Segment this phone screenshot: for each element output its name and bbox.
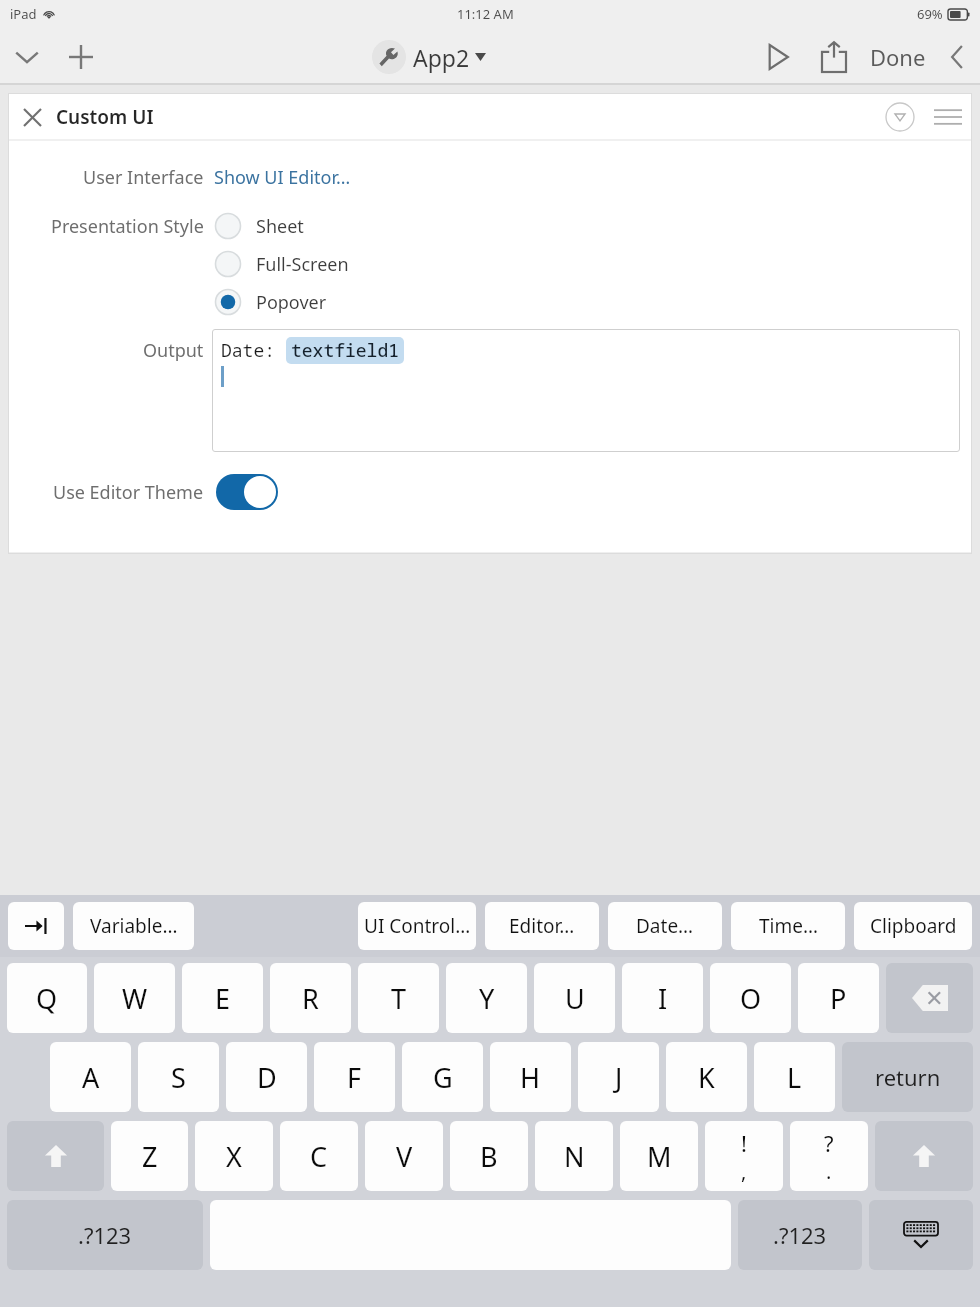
staticText: X xyxy=(226,1138,242,1175)
staticText: Sheet xyxy=(256,214,304,239)
button[interactable]: return xyxy=(842,1042,973,1112)
staticText: M xyxy=(647,1138,672,1175)
button[interactable]: Hide keyboard xyxy=(869,1200,973,1270)
button[interactable]: Y xyxy=(446,963,527,1033)
button[interactable]: D xyxy=(226,1042,307,1112)
button[interactable]: Close xyxy=(8,93,56,141)
button[interactable]: R xyxy=(270,963,351,1033)
button[interactable]: E xyxy=(182,963,263,1033)
staticText: U xyxy=(565,980,585,1017)
button[interactable]: W xyxy=(94,963,175,1033)
button[interactable]: Back xyxy=(934,34,980,80)
button[interactable]: M xyxy=(620,1121,698,1191)
staticText: B xyxy=(480,1138,498,1175)
button[interactable]: App2 xyxy=(372,40,486,74)
button[interactable]: Variable… xyxy=(73,902,194,950)
staticText: textfield1 xyxy=(291,338,399,363)
button[interactable]: Run xyxy=(750,29,806,85)
button[interactable]: P xyxy=(798,963,879,1033)
button[interactable]: UI Control… xyxy=(358,902,476,950)
staticText: 69% xyxy=(917,5,943,23)
button[interactable]: Editor… xyxy=(485,902,599,950)
staticText: Popover xyxy=(256,290,327,315)
button[interactable]: .?123 xyxy=(7,1200,203,1270)
staticText: . xyxy=(826,1158,832,1185)
button[interactable]: ! xyxy=(705,1121,783,1191)
button[interactable]: Collapse section xyxy=(876,93,924,141)
button[interactable]: Shift xyxy=(7,1121,104,1191)
button[interactable]: Done xyxy=(862,28,934,85)
button[interactable]: S xyxy=(138,1042,219,1112)
button[interactable]: A xyxy=(50,1042,131,1112)
staticText: D xyxy=(257,1059,277,1096)
staticText: A xyxy=(82,1059,100,1096)
staticText: App2 xyxy=(413,42,470,73)
staticText: Full-Screen xyxy=(256,252,349,277)
button[interactable]: J xyxy=(578,1042,659,1112)
staticText: Variable… xyxy=(90,913,178,939)
button[interactable]: O xyxy=(710,963,791,1033)
button[interactable]: G xyxy=(402,1042,483,1112)
staticText: K xyxy=(698,1059,715,1096)
staticText: Date… xyxy=(636,913,694,939)
button[interactable]: Popover xyxy=(214,283,327,321)
button[interactable]: T xyxy=(358,963,439,1033)
button[interactable]: Date… xyxy=(608,902,722,950)
button[interactable]: .?123 xyxy=(738,1200,862,1270)
staticText: Editor… xyxy=(509,913,575,939)
staticText: J xyxy=(615,1059,623,1096)
staticText: Time… xyxy=(759,913,818,939)
staticText: iPad xyxy=(10,5,37,23)
button[interactable]: B xyxy=(450,1121,528,1191)
button[interactable]: K xyxy=(666,1042,747,1112)
button[interactable]: Add xyxy=(54,30,108,84)
staticText: Done xyxy=(870,42,926,72)
button[interactable]: ? xyxy=(790,1121,868,1191)
button[interactable]: Share xyxy=(806,29,862,85)
staticText: P xyxy=(830,980,847,1017)
button[interactable]: Shift right xyxy=(875,1121,973,1191)
button[interactable]: N xyxy=(535,1121,613,1191)
staticText: G xyxy=(433,1059,453,1096)
button[interactable]: Q xyxy=(7,963,87,1033)
button[interactable]: Sheet xyxy=(214,207,304,245)
button[interactable]: H xyxy=(490,1042,571,1112)
button[interactable]: F xyxy=(314,1042,395,1112)
staticText: Y xyxy=(479,980,495,1017)
button[interactable]: U xyxy=(534,963,615,1033)
button[interactable]: C xyxy=(280,1121,358,1191)
button[interactable]: V xyxy=(365,1121,443,1191)
button[interactable]: Z xyxy=(111,1121,188,1191)
staticText: L xyxy=(787,1059,802,1096)
staticText: I xyxy=(658,980,668,1017)
staticText: W xyxy=(122,980,148,1017)
staticText: S xyxy=(171,1059,186,1096)
button[interactable]: Time… xyxy=(731,902,845,950)
button[interactable]: Collapse xyxy=(0,30,54,84)
button[interactable]: Use Editor Theme toggle xyxy=(216,474,278,510)
staticText: , xyxy=(741,1158,747,1185)
staticText: N xyxy=(564,1138,585,1175)
staticText: Presentation Style xyxy=(51,214,204,239)
staticText: .?123 xyxy=(78,1220,132,1250)
button[interactable]: Reorder xyxy=(924,93,972,141)
button[interactable]: I xyxy=(622,963,703,1033)
button[interactable]: Backspace xyxy=(886,963,973,1033)
staticText: Q xyxy=(36,980,58,1017)
staticText: R xyxy=(302,980,319,1017)
staticText: ! xyxy=(741,1128,747,1158)
button[interactable]: Date: xyxy=(212,329,960,452)
button[interactable]: Full-Screen xyxy=(214,245,349,283)
staticText: T xyxy=(391,980,407,1017)
staticText: E xyxy=(215,980,231,1017)
button[interactable]: Clipboard xyxy=(854,902,972,950)
button[interactable]: X xyxy=(195,1121,273,1191)
button[interactable]: L xyxy=(754,1042,835,1112)
staticText: Show UI Editor… xyxy=(214,165,351,190)
staticText: C xyxy=(310,1138,328,1175)
button[interactable]: Show UI Editor… xyxy=(214,165,351,190)
button[interactable]: Tab xyxy=(8,902,64,950)
staticText: User Interface xyxy=(83,165,204,190)
staticText: H xyxy=(520,1059,541,1096)
